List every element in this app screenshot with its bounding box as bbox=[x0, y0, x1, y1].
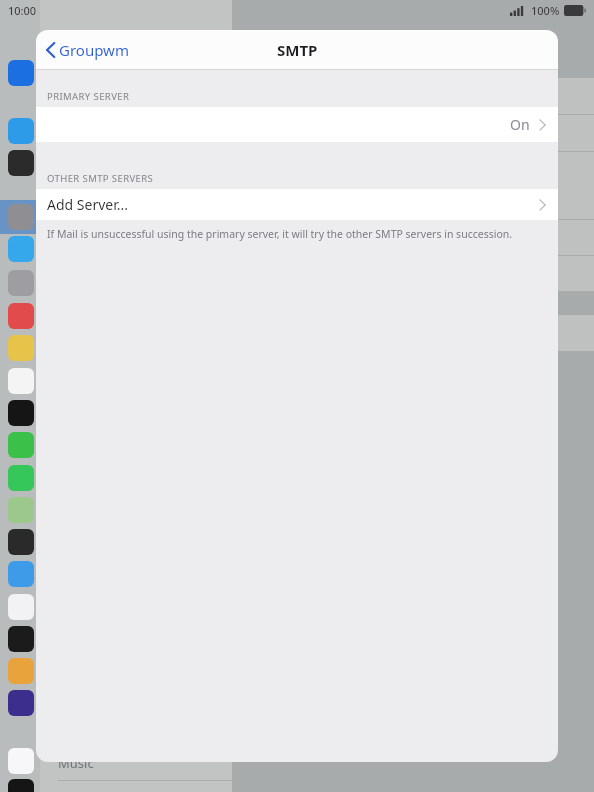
button[interactable]: Groupwm bbox=[36, 30, 141, 70]
staticText: 100% bbox=[531, 3, 560, 18]
staticText: 10:00 bbox=[8, 3, 37, 18]
staticText: Groupwm bbox=[59, 40, 129, 60]
staticText: On bbox=[510, 115, 530, 134]
staticText: PRIMARY SERVER bbox=[47, 90, 130, 103]
staticText: OTHER SMTP SERVERS bbox=[47, 172, 154, 185]
staticText: SMTP bbox=[277, 40, 318, 60]
staticText: Add Server... bbox=[47, 195, 128, 214]
button[interactable]: Add Server... bbox=[36, 189, 558, 220]
staticText: If Mail is unsuccessful using the primar… bbox=[47, 227, 513, 241]
button[interactable]: On bbox=[36, 107, 558, 142]
staticText: Music bbox=[58, 754, 94, 772]
